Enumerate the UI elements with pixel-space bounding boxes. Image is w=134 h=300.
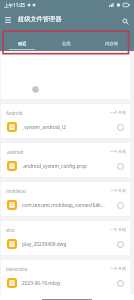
button[interactable]: Select file (115, 161, 125, 171)
staticText: com.tencent.mobileqq_connectSdk... (22, 202, 112, 209)
staticText: mobileqq (6, 188, 26, 193)
staticText: 最近 (18, 41, 27, 46)
button[interactable]: Select file (115, 239, 125, 249)
button[interactable]: Search (118, 12, 132, 26)
staticText: 一个月前 (110, 110, 126, 115)
button[interactable]: Select file (115, 122, 125, 132)
staticText: 一个月前 (110, 149, 126, 154)
staticText: 2023-06-19.mlog (22, 280, 112, 287)
button[interactable]: com.tencent.mobileqq_connectSdk... (1, 196, 130, 214)
staticText: play_20230409.dwg (22, 241, 112, 248)
button[interactable]: 内存储 (89, 28, 134, 51)
button[interactable]: .android_system_config.prop (1, 157, 130, 175)
staticText: playerslog (6, 266, 28, 271)
button[interactable]: Select file (115, 200, 125, 210)
staticText: 内存储 (105, 41, 118, 46)
staticText: .android (6, 149, 24, 154)
button[interactable]: _system_android_i2 (1, 118, 130, 136)
staticText: 超级文件管理器 (18, 15, 62, 23)
staticText: 一个月前 (110, 227, 126, 232)
button[interactable]: Menu (1, 12, 15, 26)
staticText: .android_system_config.prop (22, 163, 112, 170)
staticText: vlog (6, 227, 15, 232)
staticText: 分类 (62, 41, 71, 46)
button[interactable]: 分类 (44, 28, 89, 51)
button[interactable]: 最近 (0, 28, 44, 51)
staticText: 一个月前 (110, 188, 126, 193)
staticText: _system_android_i2 (22, 124, 112, 131)
button[interactable]: play_20230409.dwg (1, 235, 130, 253)
button[interactable]: Select file (115, 278, 125, 288)
staticText: Android (6, 110, 23, 115)
staticText: 上午11:25 (4, 2, 25, 8)
button[interactable]: 2023-06-19.mlog (1, 274, 130, 292)
staticText: 一个月前 (110, 266, 126, 271)
